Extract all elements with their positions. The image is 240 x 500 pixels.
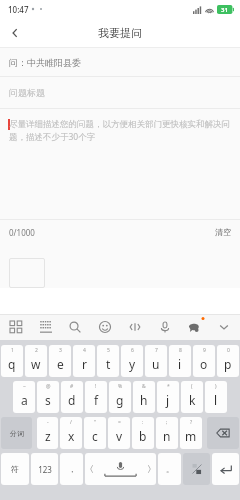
staticText: r [82,356,87,372]
staticText: 0/1000 [9,227,35,238]
button[interactable]: " [84,417,106,449]
staticText: i [178,356,182,372]
staticText: 8 [179,347,182,354]
staticText: % [118,383,123,390]
button[interactable]: 符 [1,453,29,485]
button[interactable]: ; [156,417,178,449]
staticText: 。 [166,464,174,474]
staticText: n [163,428,171,444]
button[interactable]: 7 [145,345,167,377]
staticText: ~ [23,383,26,390]
staticText: @ [46,383,51,390]
button[interactable]: 5 [97,345,119,377]
staticText: m [185,428,197,444]
button[interactable]: Switch language [183,453,210,485]
button[interactable]: ! [85,381,107,413]
button[interactable]: 1 [1,345,23,377]
button[interactable]: * [157,381,179,413]
button[interactable]: 2 [25,345,47,377]
staticText: d [68,392,76,408]
staticText: 0 [227,347,230,354]
staticText: / [70,419,72,426]
button[interactable]: 尽量详细描述您的问题，以方便相关部门更快核实和解决问题，描述不少于30个字 [0,109,240,219]
button[interactable]: Add image [9,258,45,288]
button[interactable]: Stickers [184,317,204,337]
staticText: 我要提问 [98,26,142,40]
button[interactable]: ， [60,453,83,485]
staticText: # [70,383,74,390]
button[interactable]: 问题标题 [0,77,240,108]
staticText: x [68,428,75,444]
staticText: g [116,392,124,408]
staticText: 5 [107,347,110,354]
button[interactable]: Emoji [95,317,115,337]
staticText: u [152,356,160,372]
button[interactable]: ~ [13,381,35,413]
staticText: 7 [155,347,158,354]
button[interactable]: Clipboard [125,317,145,337]
button[interactable]: Voice input [155,317,175,337]
staticText: 符 [11,464,19,474]
button[interactable]: @ [37,381,59,413]
button[interactable]: Backspace [207,417,239,449]
staticText: w [31,356,41,372]
staticText: 2 [35,347,38,354]
staticText: k [189,392,196,408]
button[interactable]: 4 [73,345,95,377]
staticText: - [47,419,49,426]
staticText: 9 [203,347,206,354]
staticText: * [167,383,170,390]
button[interactable]: Apps [6,317,26,337]
button[interactable]: Hide keyboard [214,317,234,337]
button[interactable]: Space [85,453,156,485]
button[interactable]: 6 [121,345,143,377]
button[interactable]: % [109,381,131,413]
button[interactable]: 9 [193,345,215,377]
button[interactable]: 。 [158,453,181,485]
staticText: 问：中共睢阳县委 [9,57,81,68]
staticText: e [57,356,64,372]
button[interactable]: # [61,381,83,413]
staticText: = [118,419,121,426]
button[interactable]: 0 [217,345,239,377]
staticText: l [214,392,218,408]
button[interactable]: Keyboard [36,317,56,337]
staticText: t [106,356,111,372]
button[interactable]: 清空 [206,227,240,237]
button[interactable]: Back [0,18,30,48]
staticText: 尽量详细描述您的问题，以方便相关部门更快核实和解决问题，描述不少于30个字 [9,119,231,143]
button[interactable]: 分词 [1,417,32,449]
staticText: & [142,383,146,390]
staticText: ) [215,383,217,390]
staticText: h [140,392,148,408]
staticText: " [94,419,97,426]
button[interactable]: & [133,381,155,413]
staticText: f [94,392,99,408]
button[interactable]: = [108,417,130,449]
button[interactable]: / [60,417,82,449]
staticText: v [116,428,123,444]
button[interactable]: ? [180,417,202,449]
staticText: 123 [38,464,52,475]
button[interactable]: - [37,417,58,449]
staticText: 4 [83,347,86,354]
button[interactable]: 123 [31,453,58,485]
staticText: ! [95,383,97,390]
button[interactable]: Enter [212,453,239,485]
button[interactable]: 8 [169,345,191,377]
button[interactable]: 问：中共睢阳县委 [0,48,240,76]
button[interactable]: Search [65,317,85,337]
staticText: q [8,356,16,372]
staticText: 3 [59,347,62,354]
button[interactable]: ) [205,381,227,413]
staticText: 问题标题 [9,87,45,98]
staticText: c [92,428,98,444]
staticText: ; [166,419,168,426]
button[interactable]: : [132,417,154,449]
button[interactable]: 3 [49,345,71,377]
staticText: p [224,356,232,372]
staticText: : [142,419,144,426]
button[interactable]: ( [181,381,203,413]
staticText: 6 [131,347,134,354]
staticText: z [45,428,51,444]
